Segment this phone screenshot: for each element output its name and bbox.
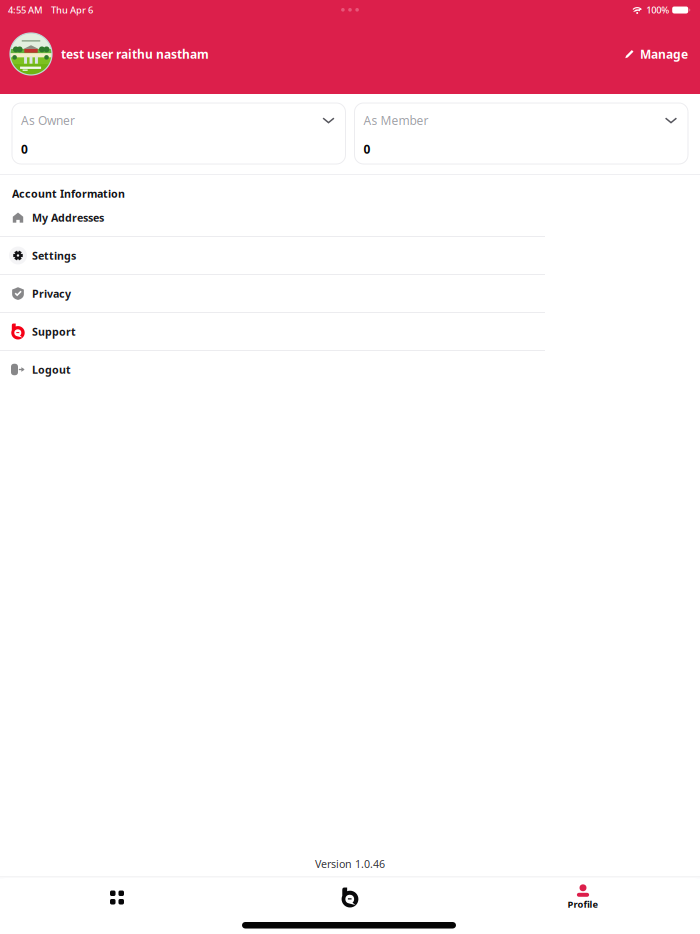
staticText: Support <box>32 324 76 339</box>
button[interactable]: Manage <box>615 40 700 68</box>
staticText: Thu Apr 6 <box>51 4 93 16</box>
button[interactable]: Privacy <box>0 275 700 313</box>
button[interactable]: Dashboard <box>0 878 233 917</box>
staticText: test user raithu nastham <box>61 46 209 62</box>
button[interactable]: Logout <box>0 351 700 389</box>
staticText: Account Information <box>12 186 125 201</box>
staticText: Privacy <box>32 286 71 301</box>
staticText: Logout <box>32 362 71 377</box>
staticText: As Owner <box>21 112 75 128</box>
staticText: 100% <box>646 4 669 16</box>
staticText: 4:55 AM <box>8 4 43 16</box>
staticText: Settings <box>32 248 76 263</box>
button[interactable]: Settings <box>0 237 700 275</box>
button[interactable]: As Member <box>354 103 688 164</box>
staticText: 0 <box>363 141 370 157</box>
staticText: 0 <box>21 141 28 157</box>
staticText: My Addresses <box>32 210 104 225</box>
staticText: Version 1.0.46 <box>315 857 385 871</box>
staticText: As Member <box>363 112 428 128</box>
staticText: Profile <box>567 898 598 910</box>
button[interactable]: Support <box>0 313 700 351</box>
button[interactable]: Home <box>233 878 466 917</box>
button[interactable]: As Owner <box>12 103 345 164</box>
button[interactable]: My Addresses <box>0 199 700 237</box>
button[interactable]: Profile <box>466 878 699 917</box>
staticText: Manage <box>640 46 688 62</box>
